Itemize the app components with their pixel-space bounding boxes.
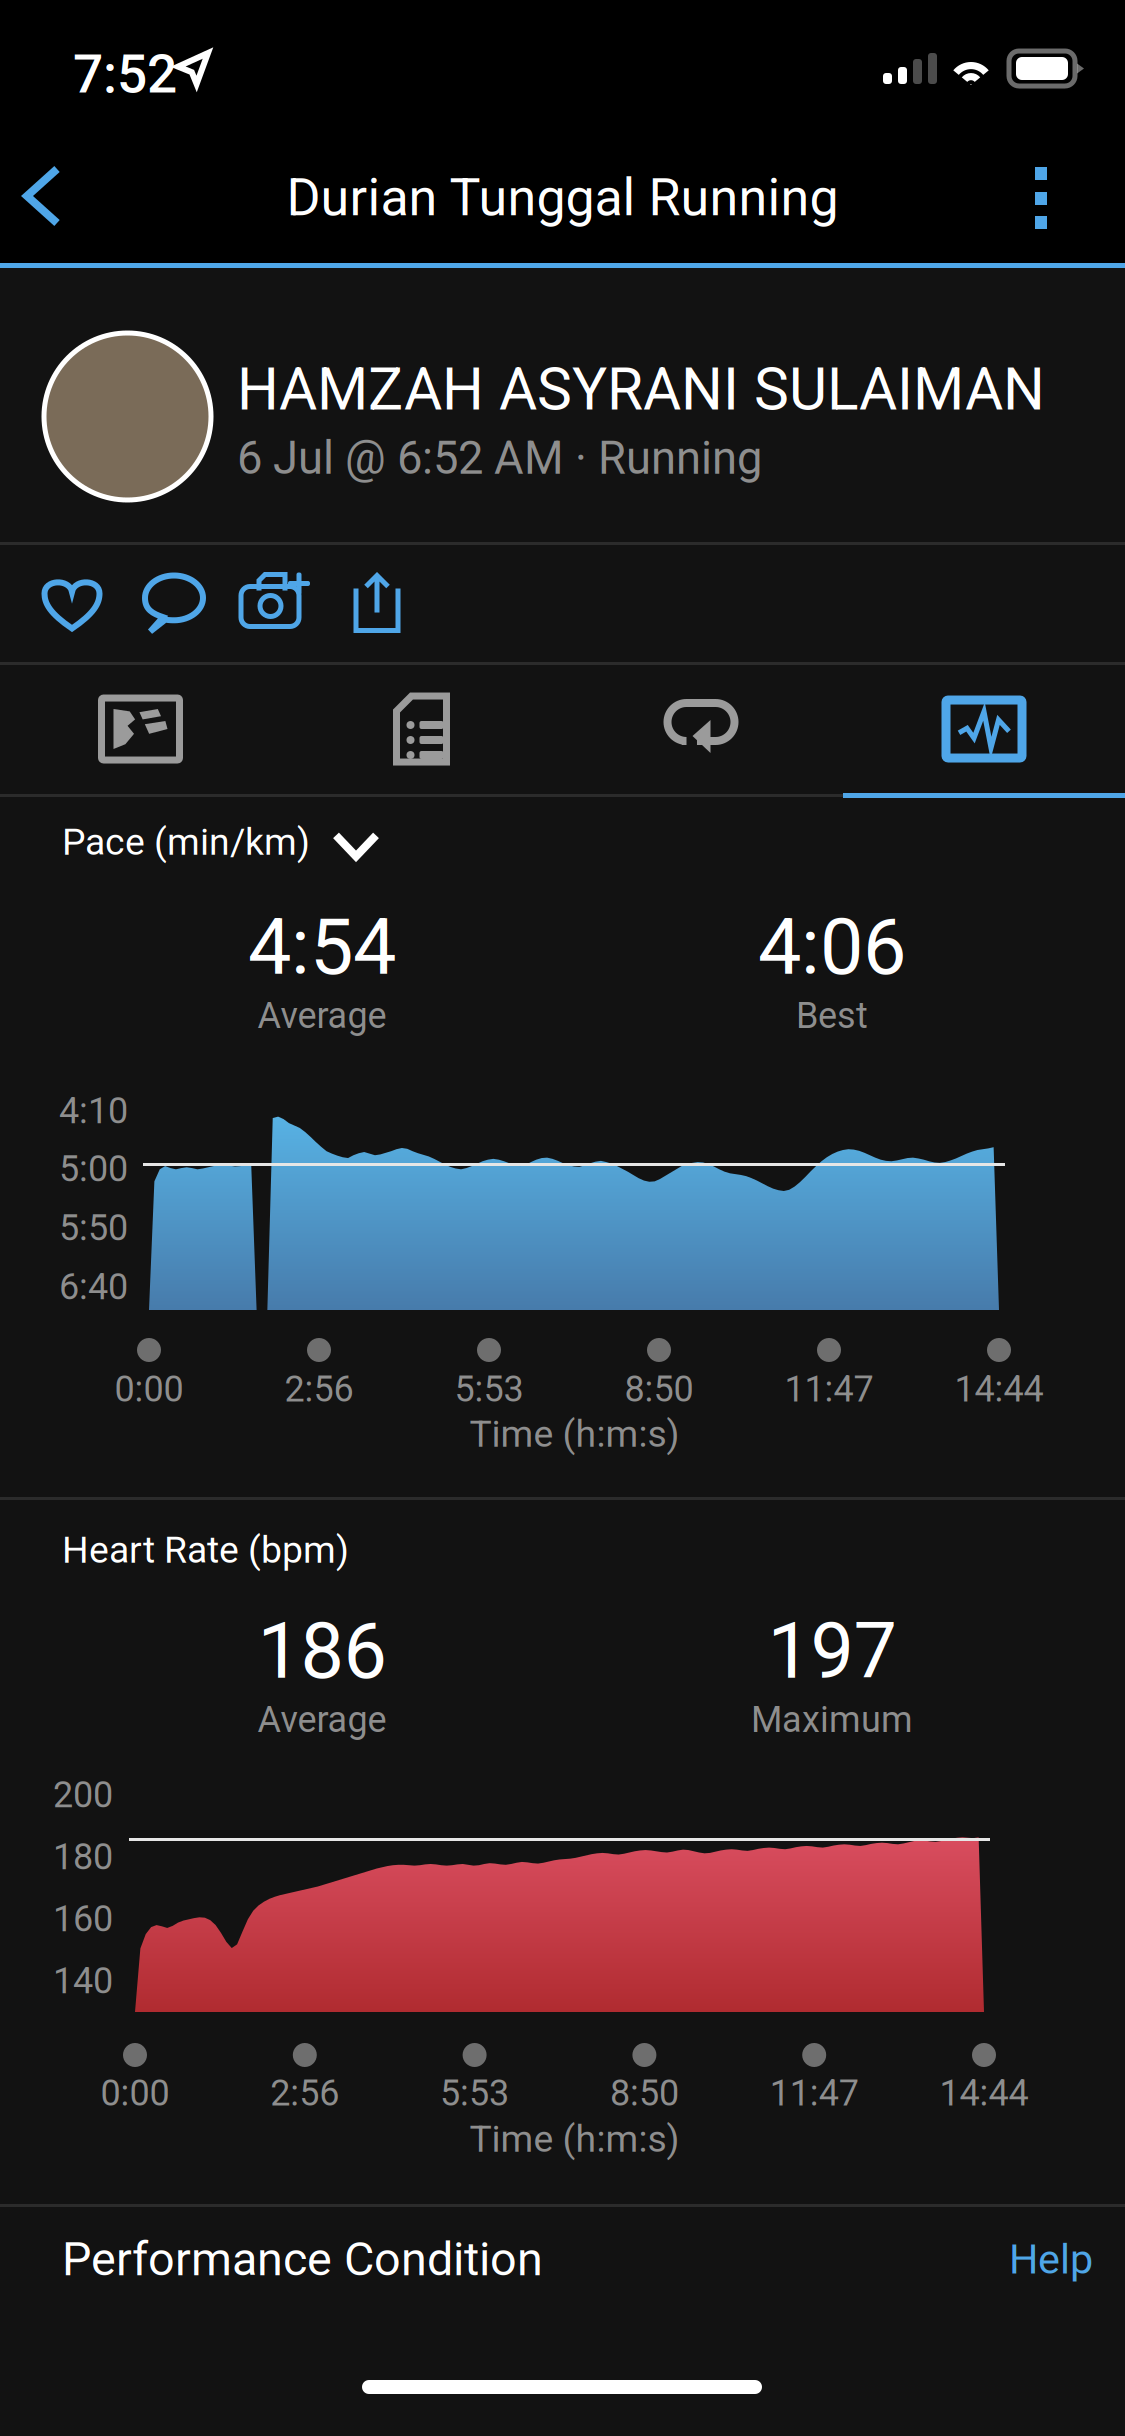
button[interactable]: HAMZAH ASYRANI SULAIMAN (0, 268, 1125, 542)
staticText: 5:53 (440, 2072, 509, 2114)
button[interactable]: More options (1000, 132, 1110, 263)
button[interactable]: Share (327, 545, 427, 662)
staticText: Durian Tunggal Running (286, 167, 838, 228)
staticText: 14:44 (939, 2072, 1028, 2114)
staticText: 2:56 (284, 1368, 353, 1410)
button[interactable]: Help (1009, 2235, 1093, 2283)
button[interactable]: Laps (562, 665, 843, 793)
staticText: 8:50 (610, 2072, 679, 2114)
button[interactable]: Charts (843, 665, 1125, 793)
staticText: 4:10 (59, 1090, 128, 1132)
staticText: 5:50 (59, 1207, 128, 1249)
staticText: 2:56 (270, 2072, 339, 2114)
button[interactable]: Add photo (226, 545, 326, 662)
staticText: 5:00 (59, 1148, 128, 1190)
button[interactable]: Details (281, 665, 562, 793)
staticText: 0:00 (114, 1368, 183, 1410)
button[interactable]: Like (22, 545, 122, 662)
staticText: 4:54 (248, 902, 396, 993)
staticText: 7:52 (73, 43, 177, 105)
staticText: HAMZAH ASYRANI SULAIMAN (237, 355, 1045, 424)
staticText: 5:53 (454, 1368, 523, 1410)
staticText: 186 (257, 1606, 386, 1697)
staticText: 140 (53, 1960, 113, 2002)
staticText: 4:06 (758, 902, 906, 993)
staticText: 8:50 (624, 1368, 693, 1410)
staticText: Average (257, 1699, 386, 1741)
button[interactable]: Map (0, 665, 281, 793)
staticText: Best (796, 995, 868, 1037)
staticText: 11:47 (784, 1368, 873, 1410)
staticText: 14:44 (954, 1368, 1043, 1410)
staticText: Pace (min/km) (62, 820, 310, 864)
staticText: 160 (53, 1898, 113, 1940)
button[interactable]: Back (0, 132, 112, 263)
staticText: 11:47 (770, 2072, 859, 2114)
staticText: Time (h:m:s) (469, 2117, 679, 2161)
staticText: Performance Condition (62, 2232, 543, 2287)
staticText: 197 (767, 1606, 896, 1697)
button[interactable]: Comment (124, 545, 224, 662)
staticText: 180 (53, 1836, 113, 1878)
staticText: Average (257, 995, 386, 1037)
staticText: 6 Jul @ 6:52 AM · Running (237, 432, 762, 485)
staticText: 0:00 (100, 2072, 169, 2114)
staticText: Time (h:m:s) (469, 1412, 679, 1456)
staticText: 6:40 (59, 1266, 128, 1308)
staticText: Help (1009, 2235, 1093, 2283)
staticText: 200 (53, 1774, 113, 1816)
staticText: Maximum (751, 1699, 913, 1741)
staticText: Heart Rate (bpm) (62, 1528, 349, 1572)
